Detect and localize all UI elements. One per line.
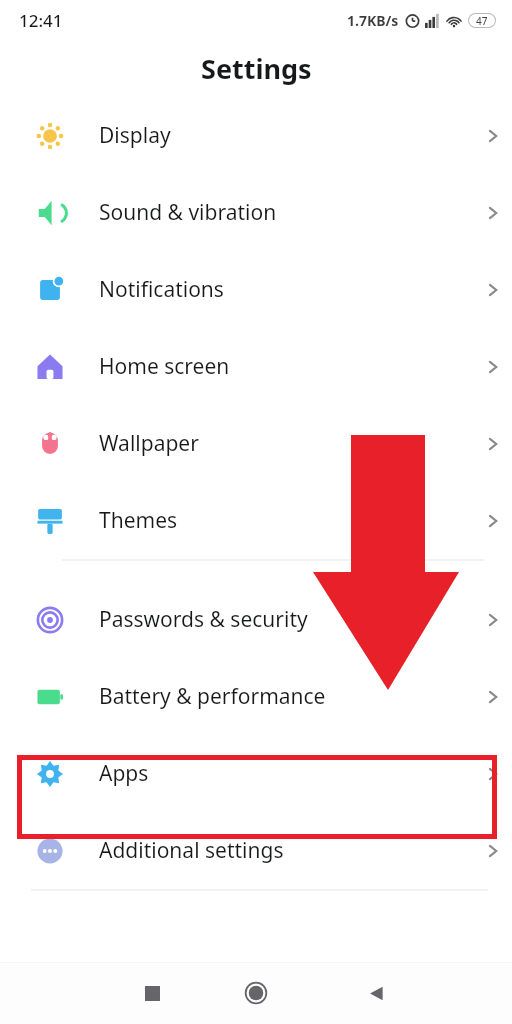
staticText: Settings	[201, 50, 312, 87]
button[interactable]: Themes	[0, 482, 512, 559]
button[interactable]: Notifications	[0, 251, 512, 328]
staticText: Apps	[99, 759, 473, 788]
staticText: 47	[476, 14, 488, 27]
button[interactable]: Additional settings	[0, 812, 512, 889]
staticText: 1.7KB/s	[347, 11, 399, 30]
button[interactable]: Back	[361, 978, 391, 1008]
button[interactable]: Home	[240, 977, 272, 1009]
staticText: Themes	[99, 506, 473, 535]
button[interactable]: Recent apps	[137, 978, 167, 1008]
staticText: Passwords & security	[99, 605, 473, 634]
button[interactable]: Apps	[0, 735, 512, 812]
button[interactable]: Battery & performance	[0, 658, 512, 735]
button[interactable]: Home screen	[0, 328, 512, 405]
button[interactable]: Wallpaper	[0, 405, 512, 482]
staticText: Display	[99, 121, 473, 150]
staticText: Wallpaper	[99, 429, 473, 458]
staticText: Battery & performance	[99, 682, 473, 711]
staticText: 12:41	[19, 9, 63, 32]
button[interactable]: Sound & vibration	[0, 174, 512, 251]
button[interactable]: Passwords & security	[0, 581, 512, 658]
button[interactable]: Display	[0, 97, 512, 174]
staticText: Home screen	[99, 352, 473, 381]
staticText: Sound & vibration	[99, 198, 473, 227]
staticText: Notifications	[99, 275, 473, 304]
staticText: Additional settings	[99, 836, 473, 865]
